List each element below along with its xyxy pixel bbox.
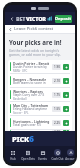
staticText: Deposit xyxy=(55,16,72,22)
staticText: VICTOR xyxy=(26,15,46,22)
button[interactable]: Pick6 xyxy=(5,131,75,146)
button[interactable]: Dustin Poirier – Benoit Saint xyxy=(8,60,72,73)
button[interactable]: 1.55 xyxy=(52,106,61,112)
staticText: Erling Haaland anytime scorer xyxy=(13,107,51,111)
button[interactable]: Deposit xyxy=(55,15,72,23)
button[interactable]: Warriors – Raptors xyxy=(8,88,72,101)
staticText: Man City – Tottenham xyxy=(13,103,49,107)
button[interactable]: Add selection xyxy=(63,130,69,131)
staticText: Both teams to score in match xyxy=(13,81,51,85)
button[interactable]: 2.10 xyxy=(52,78,61,84)
button[interactable]: Open Bets xyxy=(20,146,35,163)
staticText: 6 xyxy=(29,133,34,145)
staticText: Warriors – Raptors xyxy=(13,89,43,93)
staticText: 1.75 xyxy=(54,93,60,97)
staticText: Dustin Poirier to win by KO xyxy=(13,65,51,69)
button[interactable]: Back xyxy=(8,15,15,22)
button[interactable]: Rangers – Newcastle United xyxy=(8,74,72,87)
staticText: 2.25 xyxy=(54,121,60,125)
button[interactable]: 1.75 xyxy=(52,92,61,98)
button[interactable]: Offers xyxy=(46,15,53,22)
button[interactable]: Yankees – Dodgers FC xyxy=(8,130,72,131)
staticText: MMA · UFC xyxy=(13,69,28,73)
staticText: Cash Out xyxy=(51,157,64,161)
button[interactable]: Account xyxy=(65,146,75,163)
button[interactable]: Hub xyxy=(5,146,20,163)
staticText: Open Bets xyxy=(21,157,35,161)
staticText: Steph Curry over 27.5 points xyxy=(13,93,51,97)
button[interactable]: Add selection xyxy=(63,78,69,84)
button[interactable]: 2.25 xyxy=(52,120,61,126)
staticText: Your picks are in! xyxy=(9,38,62,46)
staticText: Dustin Poirier – Benoit Saint xyxy=(13,61,51,65)
staticText: Total goals over 5.5 xyxy=(13,123,42,127)
button[interactable]: Leave Pick6 contest xyxy=(5,25,75,33)
staticText: Basketball xyxy=(13,97,27,101)
staticText: 1.55 xyxy=(54,107,60,111)
staticText: Hub xyxy=(10,157,16,161)
button[interactable]: 1.90 xyxy=(52,64,61,70)
staticText: Leave Pick6 contest xyxy=(14,26,54,32)
button[interactable]: Add selection xyxy=(63,64,69,70)
staticText: BET xyxy=(16,15,26,22)
staticText: Account xyxy=(65,157,75,161)
staticText: Get the latest odds on tonight's games, … xyxy=(9,48,71,57)
button[interactable]: Events xyxy=(35,146,50,163)
staticText: Rangers – Newcastle United xyxy=(13,77,51,81)
staticText: 3.10 xyxy=(54,130,60,131)
button[interactable]: Add selection xyxy=(63,92,69,98)
staticText: PICK xyxy=(12,134,29,144)
staticText: Events xyxy=(38,157,47,161)
button[interactable]: Cash Out xyxy=(50,146,65,163)
button[interactable]: Add selection xyxy=(63,106,69,112)
staticText: 1.90 xyxy=(54,65,60,69)
button[interactable]: BetVictor home xyxy=(16,15,46,22)
button[interactable]: Man City – Tottenham xyxy=(8,102,72,115)
staticText: Soccer · EPL xyxy=(13,111,29,115)
staticText: Hurricanes – Lightning xyxy=(13,119,50,123)
button[interactable]: 3.10 xyxy=(52,130,61,131)
staticText: 2.10 xyxy=(54,79,60,83)
button[interactable]: Add selection xyxy=(63,120,69,126)
button[interactable]: Hurricanes – Lightning xyxy=(8,116,72,129)
